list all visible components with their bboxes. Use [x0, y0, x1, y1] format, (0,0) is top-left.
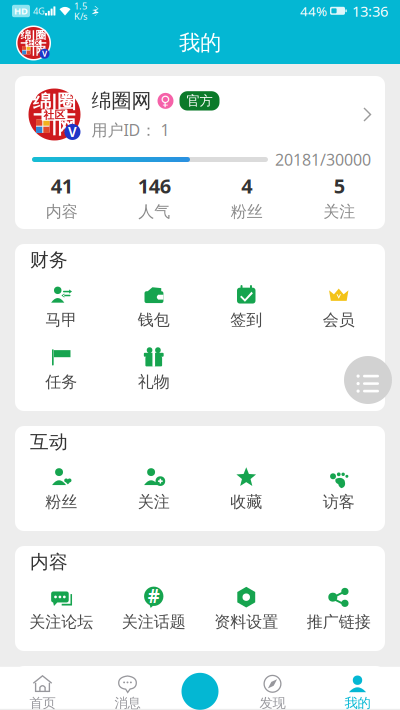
staticText: 20181/30000	[275, 149, 371, 170]
staticText: 钱包	[138, 310, 170, 330]
button[interactable]: 菜单	[344, 356, 392, 404]
button[interactable]: 马甲	[15, 276, 107, 338]
staticText: 发现	[259, 695, 285, 710]
staticText: 社区	[26, 39, 40, 47]
button[interactable]: 访客	[292, 458, 385, 520]
button[interactable]: 绵	[15, 76, 385, 153]
staticText: 官方	[186, 93, 212, 109]
staticText: 44%	[300, 2, 327, 20]
button[interactable]: 首页	[0, 675, 85, 710]
button[interactable]: 消息	[85, 675, 170, 710]
staticText: 人气	[138, 202, 170, 222]
staticText: 13:36	[352, 1, 388, 21]
staticText: 146	[138, 172, 171, 199]
staticText: 4	[241, 172, 252, 199]
staticText: 我的	[344, 695, 370, 710]
staticText: 首页	[29, 695, 55, 710]
staticText: V	[68, 123, 77, 141]
staticText: 社区	[43, 108, 65, 122]
staticText: 内容	[46, 202, 78, 222]
button[interactable]: 推广链接	[292, 578, 385, 640]
staticText: 访客	[323, 492, 355, 512]
staticText: 签到	[230, 310, 262, 330]
button[interactable]: 发布	[181, 673, 218, 710]
staticText: 任务	[45, 372, 77, 392]
staticText: 关注论坛	[29, 612, 93, 632]
staticText: 5	[334, 172, 345, 199]
staticText: 会员	[323, 310, 355, 330]
staticText: 马甲	[45, 310, 77, 330]
staticText: 内容	[30, 550, 68, 573]
button[interactable]: 粉丝	[15, 458, 107, 520]
button[interactable]: 会员	[292, 276, 385, 338]
staticText: 消息	[114, 695, 140, 710]
button[interactable]: 41	[15, 158, 108, 222]
staticText: 互动	[30, 430, 68, 453]
staticText: 我的	[179, 30, 221, 56]
staticText: K/s	[74, 10, 87, 22]
staticText: 粉丝	[231, 202, 263, 222]
button[interactable]: #	[107, 578, 200, 640]
button[interactable]: 关注	[107, 458, 200, 520]
staticText: 礼物	[138, 372, 170, 392]
staticText: 关注	[138, 492, 170, 512]
staticText: 圈	[57, 90, 76, 113]
button[interactable]: 礼物	[107, 338, 200, 400]
staticText: V	[42, 48, 47, 59]
button[interactable]: 任务	[15, 338, 107, 400]
staticText: 绵圈网	[91, 89, 151, 113]
button[interactable]: 签到	[200, 276, 292, 338]
staticText: 绵	[20, 29, 31, 42]
button[interactable]: 钱包	[107, 276, 200, 338]
staticText: 网	[35, 44, 46, 57]
staticText: 收藏	[230, 492, 262, 512]
button[interactable]: 146	[108, 158, 200, 222]
staticText: 4G	[33, 5, 45, 17]
staticText: 圈	[35, 29, 46, 42]
staticText: 1.5	[74, 0, 87, 12]
staticText: HD	[14, 5, 28, 17]
button[interactable]: 发现	[230, 675, 315, 710]
button[interactable]: 资料设置	[200, 578, 292, 640]
staticText: 推广链接	[307, 612, 371, 632]
button[interactable]: 5	[293, 158, 385, 222]
button[interactable]: 我的	[315, 675, 400, 710]
button[interactable]: 4	[200, 158, 293, 222]
staticText: 关注	[323, 202, 355, 222]
staticText: 网	[57, 116, 76, 139]
staticText: ♀	[160, 93, 170, 108]
button[interactable]: 关注论坛	[15, 578, 107, 640]
staticText: #	[148, 583, 160, 608]
staticText: 财务	[30, 248, 68, 271]
button[interactable]: 个人主页	[16, 25, 51, 60]
staticText: 资料设置	[214, 612, 278, 632]
staticText: 关注话题	[122, 612, 186, 632]
staticText: 用户ID： 1	[91, 119, 169, 140]
button[interactable]: 收藏	[200, 458, 292, 520]
staticText: 41	[51, 172, 73, 199]
staticText: 绵	[33, 90, 52, 113]
staticText: 粉丝	[45, 492, 77, 512]
